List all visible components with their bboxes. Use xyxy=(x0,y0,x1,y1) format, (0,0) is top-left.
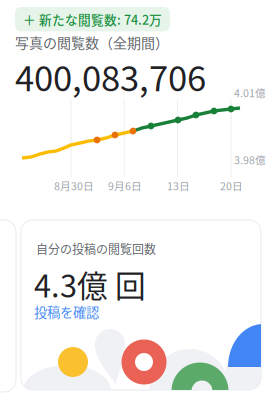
staticText: 9月6日 xyxy=(108,178,142,193)
staticText: 13日 xyxy=(167,178,190,193)
staticText: 4.3億 回 xyxy=(34,262,146,306)
staticText: 自分の投稿の閲覧回数 xyxy=(36,240,156,257)
staticText: 400,083,706 xyxy=(15,51,206,101)
staticText: 投稿を確認 xyxy=(34,302,99,321)
staticText: 写真の閲覧数（全期間） xyxy=(15,32,169,52)
staticText: 8月30日 xyxy=(54,178,94,193)
staticText: ＋ 新たな閲覧数: 74.2万 xyxy=(23,10,162,28)
staticText: 4.01億 xyxy=(234,85,266,100)
button[interactable] xyxy=(21,220,261,390)
staticText: 20日 xyxy=(220,178,243,193)
staticText: 3.98億 xyxy=(234,152,266,167)
